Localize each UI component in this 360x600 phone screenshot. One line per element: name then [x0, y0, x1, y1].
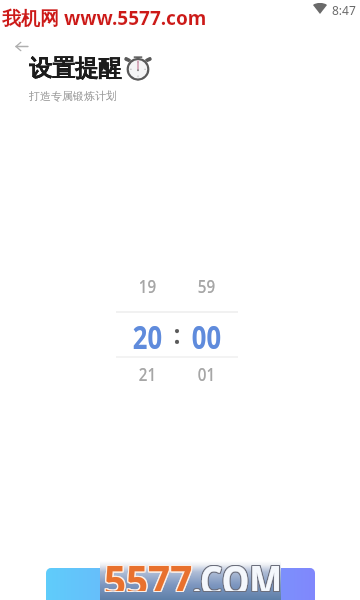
staticText: 5577: [105, 552, 193, 591]
button[interactable]: 01: [181, 362, 231, 386]
staticText: 保存提醒: [151, 582, 211, 600]
staticText: 设置提醒: [29, 54, 121, 83]
staticText: 设置提醒: [29, 54, 121, 83]
staticText: 我机网 www.5577.com: [2, 5, 207, 31]
staticText: 59: [198, 274, 215, 298]
staticText: 8:47: [332, 2, 356, 18]
staticText: .COM: [192, 552, 283, 591]
staticText: 5577: [105, 553, 193, 592]
staticText: .COM: [193, 552, 284, 591]
staticText: 01: [198, 362, 215, 386]
staticText: .COM: [193, 551, 284, 590]
button[interactable]: 保存提醒: [46, 568, 315, 600]
button[interactable]: 19: [122, 274, 172, 298]
staticText: .COM: [192, 551, 283, 590]
staticText: .COM: [192, 553, 283, 592]
button[interactable]: 59: [181, 274, 231, 298]
staticText: 5577: [104, 551, 192, 590]
staticText: 设置提醒: [29, 54, 121, 83]
staticText: .COM: [193, 553, 284, 592]
button[interactable]: Back: [8, 33, 34, 59]
staticText: 5577: [103, 551, 191, 590]
staticText: 20: [133, 315, 162, 355]
staticText: 5577: [104, 553, 192, 592]
staticText: 设置提醒: [29, 54, 121, 83]
staticText: 21: [139, 362, 156, 386]
button[interactable]: 21: [122, 362, 172, 386]
staticText: 5577: [105, 551, 193, 590]
staticText: 5577: [104, 552, 192, 591]
button[interactable]: 20: [122, 315, 172, 355]
staticText: .COM: [191, 552, 282, 591]
staticText: 19: [139, 274, 156, 298]
staticText: 5577: [103, 553, 191, 592]
staticText: 00: [192, 315, 221, 355]
button[interactable]: 00: [181, 315, 231, 355]
staticText: .COM: [191, 551, 282, 590]
staticText: 5577: [103, 552, 191, 591]
staticText: 打造专属锻炼计划: [29, 89, 117, 103]
staticText: .COM: [191, 553, 282, 592]
